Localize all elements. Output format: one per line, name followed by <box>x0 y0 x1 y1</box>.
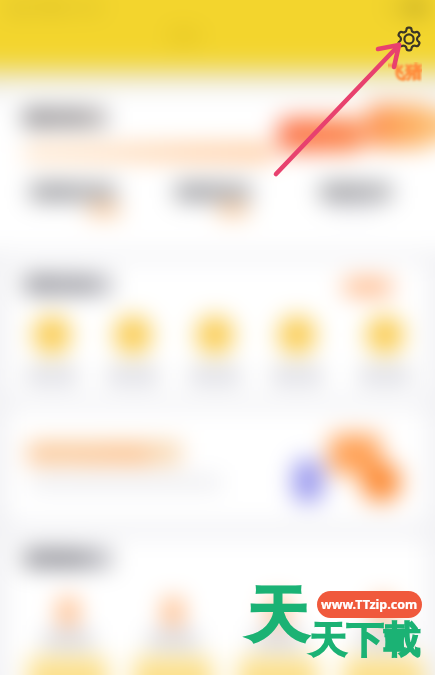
staticText: 待付款 <box>32 183 74 201</box>
staticText: 天 <box>247 577 308 654</box>
staticText: 待评价 <box>322 183 364 201</box>
staticText: 飞猪 <box>388 62 422 83</box>
staticText: 常用工具 <box>23 274 91 295</box>
staticText: 待出行 <box>178 183 220 201</box>
staticText: 推荐服务 <box>23 548 91 569</box>
staticText: 88VIP会员权益 <box>27 442 150 467</box>
button[interactable]: Settings <box>393 23 425 55</box>
staticText: 天下載 <box>309 617 420 664</box>
staticText: 我的订单 <box>22 108 82 127</box>
staticText: www.TTzip.com <box>321 596 418 613</box>
